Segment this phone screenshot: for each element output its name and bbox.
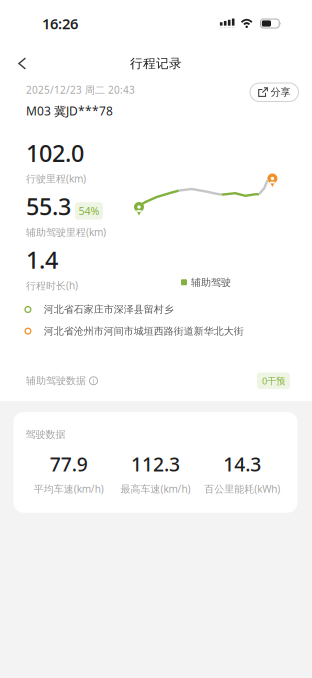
staticText: 112.3 [131, 451, 180, 477]
button[interactable]: 分享 [250, 83, 298, 101]
button[interactable]: Back [0, 48, 42, 79]
staticText: 辅助驾驶里程(km) [26, 225, 106, 239]
staticText: 2025/12/23 周二 20:43 [26, 83, 135, 97]
staticText: 平均车速(km/h) [34, 482, 104, 496]
staticText: 驾驶数据 [25, 428, 65, 441]
staticText: 16:26 [42, 13, 78, 33]
staticText: M03 冀JD***78 [26, 103, 113, 119]
staticText: 行驶里程(km) [26, 172, 86, 185]
staticText: 行程记录 [130, 55, 182, 71]
staticText: 1.4 [26, 244, 58, 276]
staticText: 河北省沧州市河间市城垣西路街道新华北大街 [44, 325, 244, 337]
staticText: 最高车速(km/h) [120, 482, 190, 496]
staticText: 河北省石家庄市深泽县留村乡 [44, 303, 174, 316]
staticText: i [92, 376, 94, 386]
staticText: 0干预 [262, 374, 285, 387]
staticText: 77.9 [50, 451, 88, 477]
staticText: 54% [78, 204, 99, 218]
staticText: 14.3 [223, 451, 261, 477]
staticText: 55.3 [26, 190, 71, 222]
staticText: 辅助驾驶 [191, 276, 231, 289]
staticText: 百公里能耗(kWh) [204, 482, 280, 496]
staticText: 分享 [270, 86, 290, 99]
staticText: 102.0 [26, 137, 84, 169]
staticText: 行程时长(h) [26, 279, 78, 292]
staticText: 辅助驾驶数据 [26, 374, 86, 387]
